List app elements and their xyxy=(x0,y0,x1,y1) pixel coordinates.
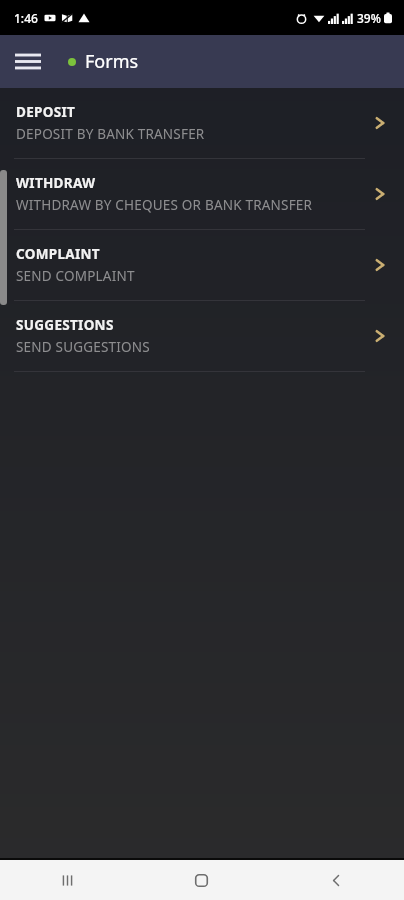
staticText: 1:46 xyxy=(14,10,38,26)
staticText: WITHDRAW xyxy=(16,174,96,192)
staticText: Forms xyxy=(85,49,139,74)
button[interactable]: WITHDRAW xyxy=(0,159,404,229)
staticText: COMPLAINT xyxy=(16,245,100,263)
staticText: SEND COMPLAINT xyxy=(16,267,135,285)
staticText: WITHDRAW BY CHEQUES OR BANK TRANSFER xyxy=(16,196,313,214)
button[interactable]: Home xyxy=(134,860,269,900)
staticText: DEPOSIT xyxy=(16,103,76,121)
button[interactable]: Recent apps xyxy=(0,860,134,900)
button[interactable]: SUGGESTIONS xyxy=(0,301,404,371)
staticText: DEPOSIT BY BANK TRANSFER xyxy=(16,125,205,143)
staticText: SEND SUGGESTIONS xyxy=(16,338,150,356)
staticText: 39% xyxy=(357,10,381,26)
button[interactable]: Open navigation menu xyxy=(0,35,56,88)
button[interactable]: Back xyxy=(269,860,404,900)
staticText: SUGGESTIONS xyxy=(16,316,114,334)
button[interactable]: COMPLAINT xyxy=(0,230,404,300)
button[interactable]: DEPOSIT xyxy=(0,88,404,158)
